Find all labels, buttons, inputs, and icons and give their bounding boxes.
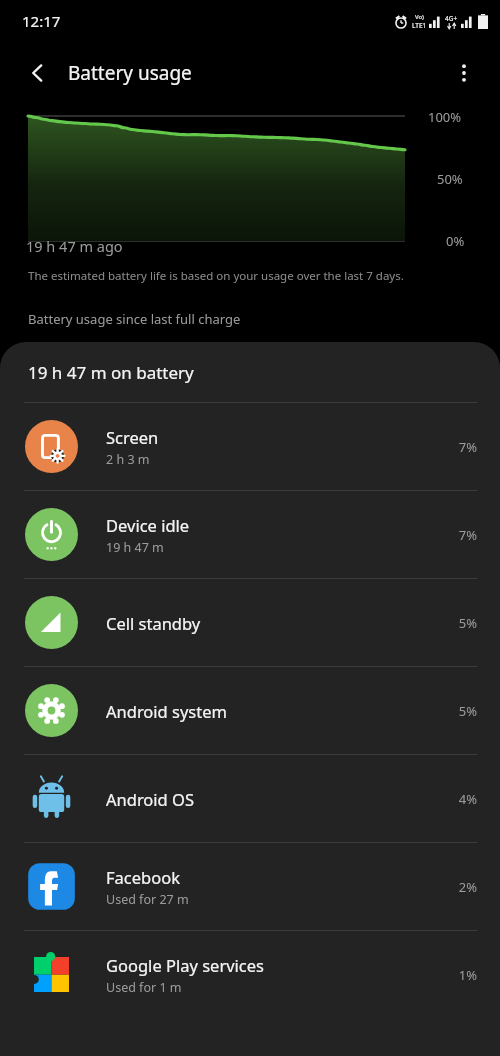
staticText: Google Play services: [106, 954, 264, 976]
staticText: The estimated battery life is based on y…: [28, 268, 404, 284]
staticText: 100%: [428, 108, 462, 126]
staticText: Used for 27 m: [106, 891, 189, 908]
staticText: Used for 1 m: [106, 979, 182, 996]
staticText: 5%: [458, 702, 477, 720]
button[interactable]: Cell standby: [0, 579, 500, 666]
staticText: Facebook: [106, 866, 180, 888]
staticText: 7%: [458, 438, 477, 456]
staticText: Device idle: [106, 514, 190, 536]
staticText: Battery usage: [68, 60, 192, 86]
button[interactable]: Facebook: [0, 843, 500, 930]
staticText: Cell standby: [106, 612, 201, 634]
staticText: 7%: [458, 526, 477, 544]
staticText: 2%: [458, 878, 477, 896]
staticText: 19 h 47 m: [106, 539, 164, 556]
staticText: Android system: [106, 700, 227, 722]
button[interactable]: More options: [442, 51, 486, 95]
staticText: Android OS: [106, 788, 194, 810]
staticText: 4G+: [445, 14, 458, 23]
button[interactable]: Screen: [0, 403, 500, 490]
staticText: 19 h 47 m on battery: [28, 361, 194, 384]
staticText: 5%: [458, 614, 477, 632]
staticText: 12:17: [22, 11, 61, 31]
button[interactable]: Android system: [0, 667, 500, 754]
button[interactable]: Device idle: [0, 491, 500, 578]
staticText: 19 h 47 m ago: [26, 236, 123, 256]
staticText: 0%: [446, 232, 465, 250]
staticText: 1%: [458, 966, 477, 984]
staticText: LTE1: [412, 21, 427, 30]
button[interactable]: Back: [16, 51, 60, 95]
staticText: Screen: [106, 426, 159, 448]
staticText: 4%: [458, 790, 477, 808]
button[interactable]: Google Play services: [0, 931, 500, 1018]
staticText: 2 h 3 m: [106, 451, 150, 468]
button[interactable]: Android OS: [0, 755, 500, 842]
staticText: Vo): [415, 13, 424, 21]
staticText: Battery usage since last full charge: [28, 310, 241, 328]
staticText: 50%: [437, 170, 463, 188]
